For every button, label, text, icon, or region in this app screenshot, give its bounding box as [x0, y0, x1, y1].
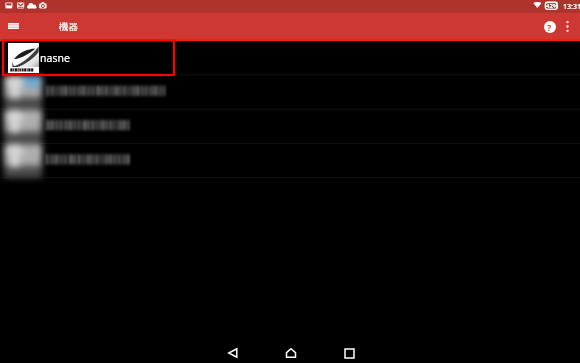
- staticText: ?: [547, 21, 552, 33]
- staticText: 42%: [546, 2, 559, 10]
- button[interactable]: Back: [223, 343, 243, 363]
- staticText: nasne: [40, 51, 70, 65]
- button[interactable]: nasne: [0, 41, 580, 75]
- staticText: 機器: [59, 21, 78, 33]
- button[interactable]: Navigation drawer: [3, 16, 23, 36]
- button[interactable]: Home: [281, 343, 301, 363]
- button[interactable]: [0, 143, 580, 177]
- button[interactable]: Help: [538, 15, 561, 38]
- button[interactable]: [0, 75, 580, 109]
- button[interactable]: More options: [556, 15, 579, 38]
- staticText: 13:31: [563, 2, 580, 12]
- button[interactable]: Recent apps: [339, 343, 359, 363]
- button[interactable]: [0, 109, 580, 143]
